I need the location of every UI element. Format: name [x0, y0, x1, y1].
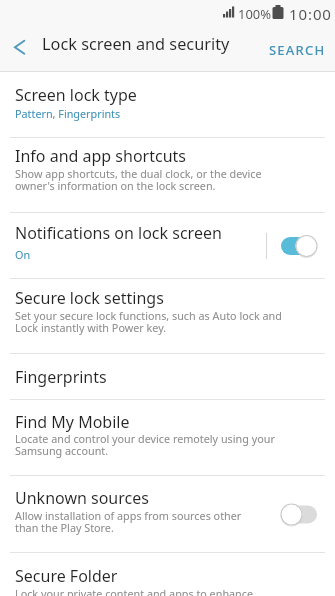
staticText: 10:00	[289, 4, 332, 24]
button[interactable]: SEARCH	[269, 41, 335, 59]
button[interactable]: Find My Mobile	[0, 400, 335, 476]
staticText: Allow installation of apps from sources …	[15, 508, 242, 523]
button[interactable]: Info and app shortcuts	[0, 138, 335, 213]
staticText: Find My Mobile	[15, 411, 130, 433]
staticText: Unknown sources	[15, 487, 149, 509]
staticText: Fingerprints	[15, 366, 107, 388]
staticText: Notifications on lock screen	[15, 222, 222, 244]
staticText: Lock instantly with Power key.	[15, 320, 167, 335]
button[interactable]: Fingerprints	[0, 354, 335, 400]
staticText: 100%	[238, 5, 272, 23]
button[interactable]: Notifications on lock screen	[0, 213, 335, 279]
staticText: Locate and control your device remotely …	[15, 431, 275, 446]
button[interactable]: Secure lock settings	[0, 279, 335, 354]
staticText: Lock screen and security	[42, 33, 230, 55]
staticText: owner's information on the lock screen.	[15, 178, 216, 193]
staticText: Lock your private content and apps to en…	[15, 586, 254, 596]
staticText: Secure Folder	[15, 565, 118, 587]
staticText: Set your secure lock functions, such as …	[15, 308, 282, 323]
staticText: Info and app shortcuts	[15, 145, 186, 167]
button[interactable]: Secure Folder	[0, 553, 335, 596]
button[interactable]	[0, 27, 40, 72]
staticText: Secure lock settings	[15, 287, 164, 309]
staticText: Pattern, Fingerprints	[15, 106, 121, 121]
staticText: SEARCH	[269, 41, 326, 59]
staticText: Show app shortcuts, the dual clock, or t…	[15, 166, 262, 181]
staticText: Screen lock type	[15, 84, 137, 106]
staticText: than the Play Store.	[15, 520, 114, 535]
staticText: Samsung account.	[15, 443, 109, 458]
staticText: On	[15, 247, 31, 262]
button[interactable]: Screen lock type	[0, 72, 335, 138]
button[interactable]: Unknown sources	[0, 476, 335, 553]
